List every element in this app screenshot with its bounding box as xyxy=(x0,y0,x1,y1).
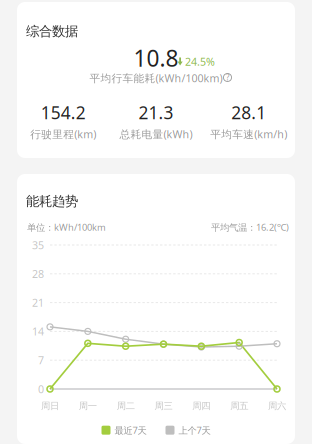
staticText: 平均气温：16.2(℃) xyxy=(211,221,289,233)
staticText: 10.8 xyxy=(133,43,178,73)
staticText: 上个7天 xyxy=(178,424,210,436)
staticText: 周六 xyxy=(268,400,286,412)
staticText: 最近7天 xyxy=(114,424,146,436)
staticText: 总耗电量(kWh) xyxy=(119,127,192,141)
staticText: 能耗趋势 xyxy=(26,193,78,209)
staticText: 7 xyxy=(38,353,44,367)
staticText: 154.2 xyxy=(41,101,86,124)
staticText: 单位：kWh/100km xyxy=(27,221,106,233)
staticText: 0 xyxy=(38,382,44,396)
staticText: 周一 xyxy=(79,400,97,412)
staticText: 平均车速(km/h) xyxy=(210,127,287,141)
staticText: 周四 xyxy=(192,400,210,412)
staticText: 35 xyxy=(32,238,44,252)
staticText: 28.1 xyxy=(231,101,266,124)
staticText: 周日 xyxy=(41,400,59,412)
staticText: 28 xyxy=(32,267,44,281)
staticText: ? xyxy=(226,72,229,83)
staticText: 24.5% xyxy=(185,54,215,69)
staticText: 14 xyxy=(32,324,44,338)
staticText: 周三 xyxy=(154,400,172,412)
staticText: 周二 xyxy=(117,400,135,412)
staticText: 综合数据 xyxy=(26,23,78,39)
staticText: 21 xyxy=(32,295,44,310)
staticText: 周五 xyxy=(230,400,248,412)
staticText: 行驶里程(km) xyxy=(30,127,96,141)
staticText: 21.3 xyxy=(138,101,173,124)
staticText: 平均行车能耗(kWh/100km) xyxy=(89,71,222,85)
